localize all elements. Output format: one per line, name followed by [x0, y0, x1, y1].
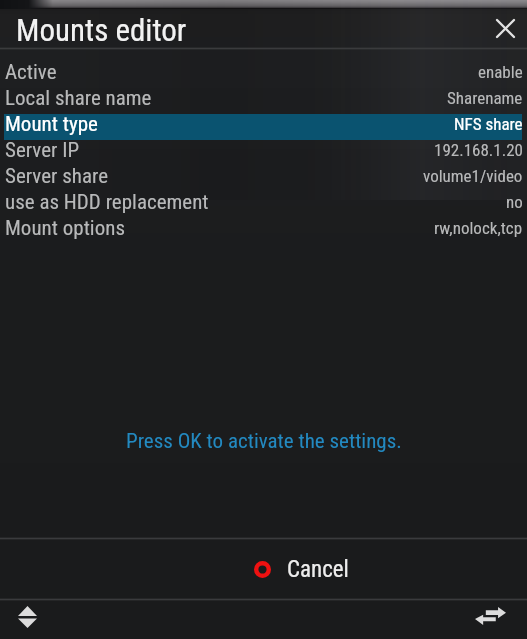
button[interactable]: Move left or right [472, 598, 508, 634]
staticText: volume1/video [423, 166, 523, 186]
staticText: no [506, 192, 523, 212]
button[interactable]: Move up or down [13, 603, 41, 631]
button[interactable]: Cancel [253, 556, 349, 583]
button[interactable]: Close [488, 11, 522, 45]
staticText: Mount options [5, 216, 125, 241]
button[interactable]: Local share name [0, 85, 527, 111]
staticText: Mounts editor [16, 12, 187, 48]
staticText: Server IP [5, 138, 80, 163]
button[interactable]: Mount type [0, 111, 527, 137]
staticText: Server share [5, 164, 109, 189]
button[interactable]: use as HDD replacement [0, 189, 527, 215]
staticText: rw,nolock,tcp [434, 218, 523, 238]
button[interactable]: Mount options [0, 215, 527, 241]
staticText: enable [478, 62, 523, 82]
staticText: Local share name [5, 86, 152, 111]
staticText: Active [5, 60, 57, 85]
staticText: Sharename [447, 88, 523, 108]
button[interactable]: Server share [0, 163, 527, 189]
staticText: Press OK to activate the settings. [126, 429, 402, 454]
staticText: NFS share [454, 114, 523, 134]
staticText: Cancel [287, 556, 349, 583]
staticText: use as HDD replacement [5, 190, 209, 215]
button[interactable]: Active [0, 59, 527, 85]
button[interactable]: Server IP [0, 137, 527, 163]
staticText: Mount type [5, 112, 98, 137]
staticText: 192.168.1.20 [434, 140, 523, 160]
